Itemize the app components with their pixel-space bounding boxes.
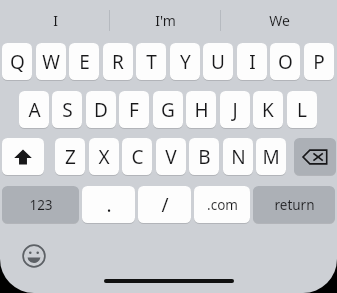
button[interactable]: N [223, 138, 253, 175]
staticText: H [194, 97, 209, 123]
staticText: return [274, 196, 315, 214]
staticText: A [28, 97, 41, 123]
staticText: M [262, 144, 280, 170]
button[interactable]: I [5, 8, 105, 32]
button[interactable]: U [203, 43, 233, 80]
staticText: S [62, 97, 73, 123]
staticText: .com [207, 196, 238, 214]
button[interactable]: Backspace [294, 138, 336, 175]
staticText: D [94, 97, 108, 123]
button[interactable]: Z [55, 138, 85, 175]
staticText: X [98, 144, 110, 170]
staticText: R [112, 49, 124, 75]
staticText: 123 [29, 196, 53, 214]
staticText: Z [65, 144, 76, 170]
button[interactable]: G [153, 91, 183, 128]
button[interactable]: Emoji keyboard [16, 238, 52, 274]
staticText: Y [180, 49, 191, 75]
button[interactable]: Q [2, 43, 32, 80]
button[interactable]: / [138, 186, 191, 223]
staticText: P [313, 49, 325, 75]
staticText: I [249, 49, 256, 75]
staticText: Q [10, 49, 25, 75]
staticText: . [106, 192, 112, 218]
button[interactable]: I [237, 43, 267, 80]
staticText: B [198, 144, 211, 170]
staticText: N [231, 144, 246, 170]
button[interactable]: R [103, 43, 133, 80]
staticText: / [161, 192, 169, 218]
staticText: O [278, 49, 293, 75]
button[interactable]: S [52, 91, 82, 128]
staticText: L [297, 97, 307, 123]
staticText: I'm [155, 11, 176, 30]
button[interactable]: Y [170, 43, 200, 80]
staticText: G [161, 97, 175, 123]
button[interactable]: 123 [2, 186, 79, 223]
staticText: C [131, 144, 144, 170]
button[interactable]: D [86, 91, 116, 128]
button[interactable]: We [229, 8, 329, 32]
button[interactable]: J [220, 91, 250, 128]
button[interactable]: H [186, 91, 216, 128]
button[interactable]: P [304, 43, 334, 80]
staticText: W [42, 49, 60, 75]
button[interactable]: M [256, 138, 286, 175]
button[interactable]: W [36, 43, 66, 80]
button[interactable]: L [287, 91, 317, 128]
button[interactable]: B [189, 138, 219, 175]
button[interactable]: K [253, 91, 283, 128]
button[interactable]: . [82, 186, 135, 223]
staticText: E [79, 49, 90, 75]
button[interactable]: X [89, 138, 119, 175]
staticText: U [211, 49, 225, 75]
staticText: V [165, 144, 177, 170]
button[interactable]: O [270, 43, 300, 80]
button[interactable]: return [253, 186, 335, 223]
staticText: T [146, 49, 157, 75]
button[interactable]: C [122, 138, 152, 175]
button[interactable]: F [119, 91, 149, 128]
button[interactable]: Shift [2, 138, 44, 175]
staticText: F [129, 97, 139, 123]
staticText: I [53, 11, 58, 30]
button[interactable]: T [136, 43, 166, 80]
staticText: J [232, 97, 238, 123]
staticText: K [262, 97, 274, 123]
button[interactable]: A [19, 91, 49, 128]
staticText: We [269, 11, 290, 30]
button[interactable]: E [69, 43, 99, 80]
button[interactable]: V [156, 138, 186, 175]
button[interactable]: I'm [115, 8, 215, 32]
button[interactable]: .com [194, 186, 250, 223]
